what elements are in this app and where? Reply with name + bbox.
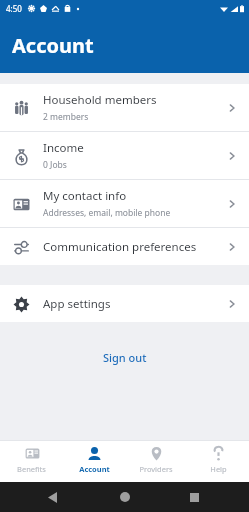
button[interactable]: Providers [125,441,187,482]
button[interactable]: Help [187,441,249,482]
staticText: Household members [43,92,157,108]
staticText: App settings [43,296,111,312]
button[interactable]: Household members [0,84,249,131]
staticText: 0 Jobs [43,159,67,171]
button[interactable]: Communication preferences [0,228,249,265]
staticText: Sign out [103,350,147,365]
staticText: Benefits [17,464,46,474]
staticText: Help [210,464,227,474]
staticText: Addresses, email, mobile phone [43,207,171,219]
staticText: 4:50 [6,3,22,14]
staticText: Account [12,32,94,59]
staticText: 2 members [43,111,89,123]
staticText: My contact info [43,188,127,204]
staticText: Account [79,464,110,474]
staticText: Communication preferences [43,239,197,255]
button[interactable]: Income [0,132,249,179]
button[interactable]: My contact info [0,180,249,227]
button[interactable]: Account [63,441,125,482]
staticText: Providers [139,464,173,474]
button[interactable]: Sign out [87,344,163,371]
button[interactable]: Benefits [0,441,63,482]
button[interactable]: App settings [0,285,249,322]
staticText: Income [43,140,84,156]
